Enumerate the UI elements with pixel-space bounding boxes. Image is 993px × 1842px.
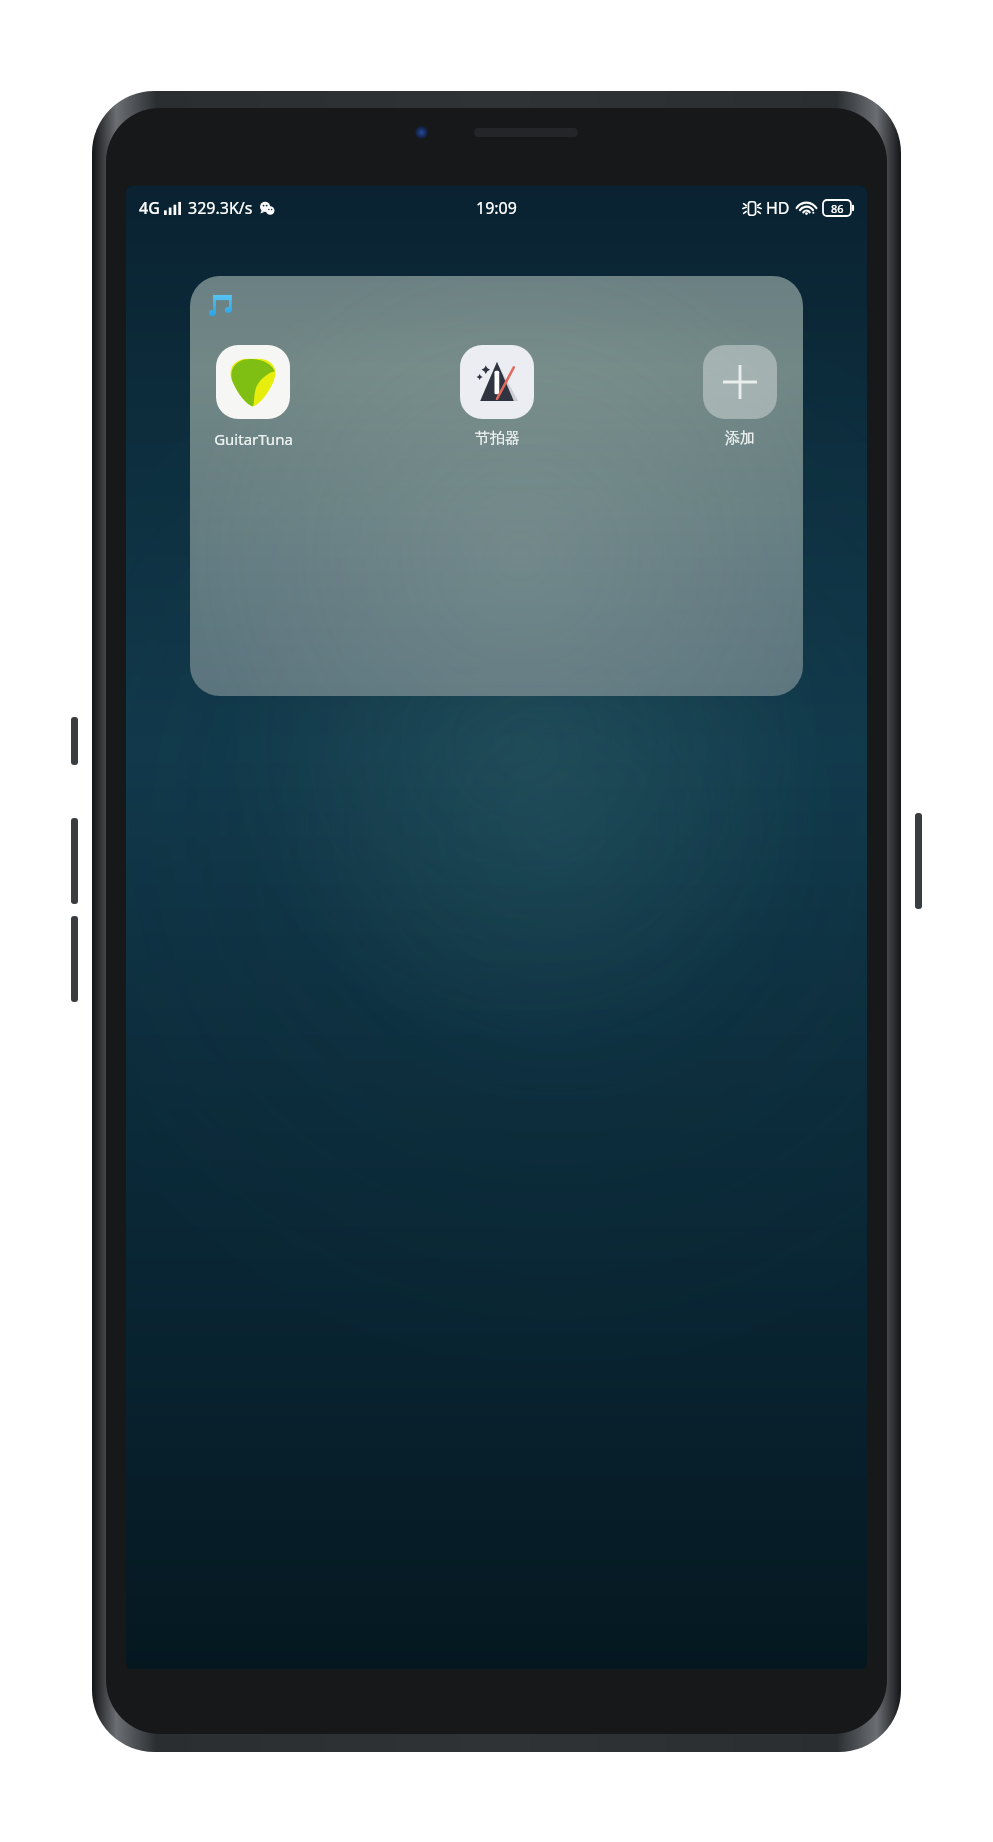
button[interactable]: Music folder — [206, 290, 240, 324]
staticText: HD — [766, 197, 790, 219]
staticText: GuitarTuna — [214, 429, 293, 449]
button[interactable]: GuitarTuna — [204, 342, 302, 451]
staticText: 19:09 — [476, 197, 517, 219]
button[interactable]: Add app — [703, 345, 777, 419]
button[interactable]: 节拍器 — [448, 342, 546, 450]
button[interactable]: Add app — [691, 342, 789, 450]
button[interactable]: Music folder — [190, 276, 803, 696]
staticText: 4G — [139, 197, 160, 219]
staticText: 86 — [831, 201, 844, 216]
staticText: 329.3K/s — [188, 197, 253, 219]
staticText: 添加 — [725, 429, 755, 448]
staticText: 节拍器 — [475, 429, 520, 448]
